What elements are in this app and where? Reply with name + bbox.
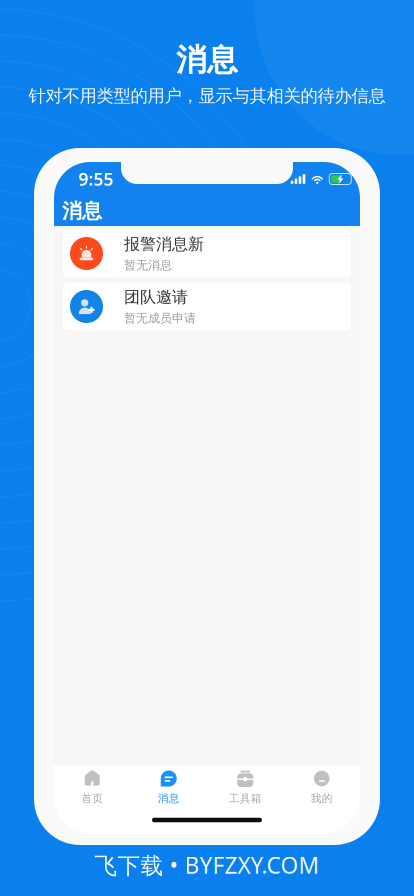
- staticText: 我的: [311, 792, 333, 805]
- staticText: 消息: [62, 199, 102, 223]
- staticText: 首页: [81, 792, 103, 805]
- staticText: 暂无成员申请: [124, 311, 196, 326]
- button[interactable]: 报警消息新: [63, 230, 351, 277]
- staticText: 消息: [176, 41, 238, 79]
- button[interactable]: 团队邀请: [63, 283, 351, 330]
- staticText: 9:55: [78, 167, 113, 190]
- staticText: 工具箱: [229, 792, 262, 805]
- staticText: 暂无消息: [124, 258, 172, 273]
- staticText: 针对不用类型的用户，显示与其相关的待办信息: [28, 85, 385, 107]
- button[interactable]: 消息: [130, 765, 207, 815]
- button[interactable]: 我的: [283, 765, 360, 815]
- staticText: 飞下载 • BYFZXY.COM: [94, 850, 319, 880]
- staticText: 消息: [158, 792, 180, 805]
- staticText: 团队邀请: [124, 287, 188, 307]
- staticText: 报警消息新: [124, 234, 204, 254]
- button[interactable]: 首页: [54, 765, 130, 815]
- button[interactable]: 工具箱: [207, 765, 283, 815]
